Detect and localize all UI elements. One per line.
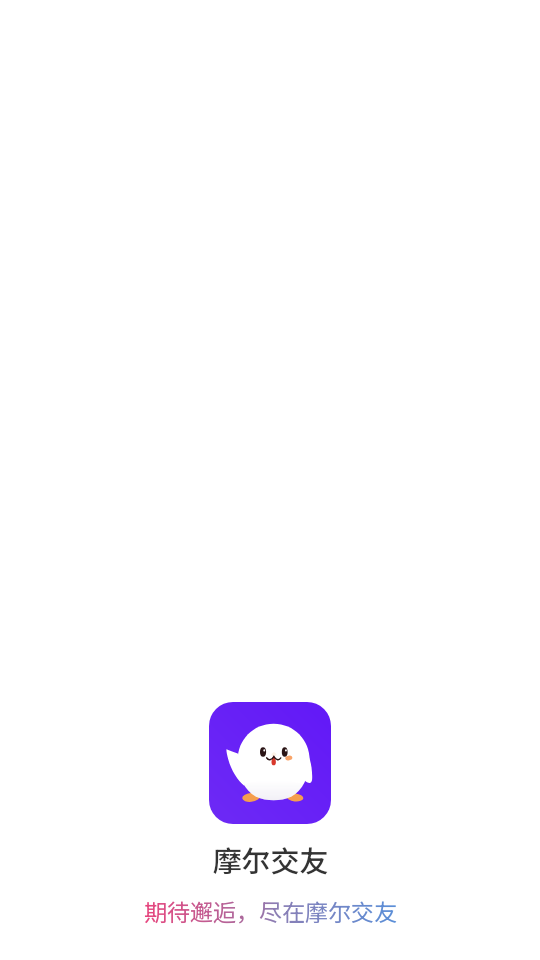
staticText: 期待邂逅，尽在摩尔交友 [144,894,397,927]
button[interactable]: 摩尔交友 [208,838,333,880]
button[interactable]: 摩尔交友 app icon [209,702,331,824]
